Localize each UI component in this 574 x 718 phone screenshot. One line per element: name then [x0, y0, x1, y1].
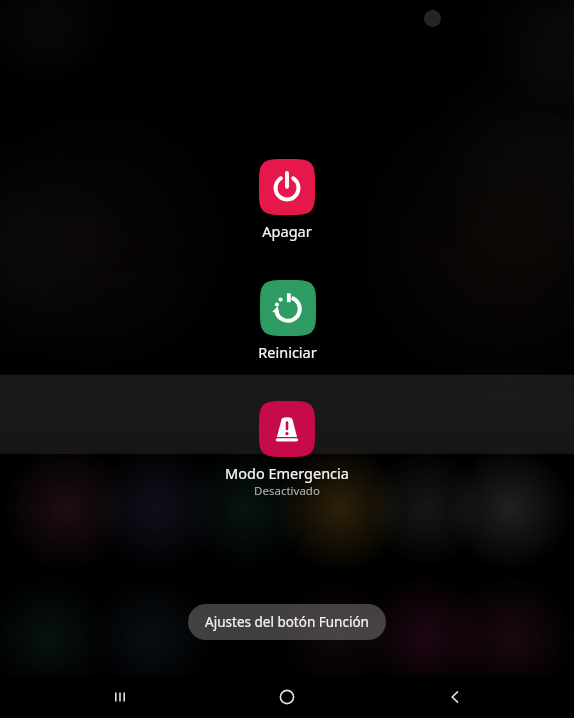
staticText: Modo Emergencia: [225, 463, 349, 483]
button[interactable]: Reiniciar: [238, 278, 337, 364]
button[interactable]: Atrás: [407, 676, 503, 718]
staticText: Reiniciar: [258, 342, 317, 362]
staticText: Desactivado: [254, 483, 320, 499]
button[interactable]: Modo Emergencia: [205, 399, 369, 501]
button[interactable]: Recientes: [72, 676, 168, 718]
button[interactable]: Inicio: [239, 676, 335, 718]
button[interactable]: Apagar: [239, 157, 335, 243]
staticText: Apagar: [262, 221, 312, 241]
button[interactable]: Ajustes del botón Función: [188, 604, 386, 640]
staticText: Ajustes del botón Función: [205, 613, 369, 631]
